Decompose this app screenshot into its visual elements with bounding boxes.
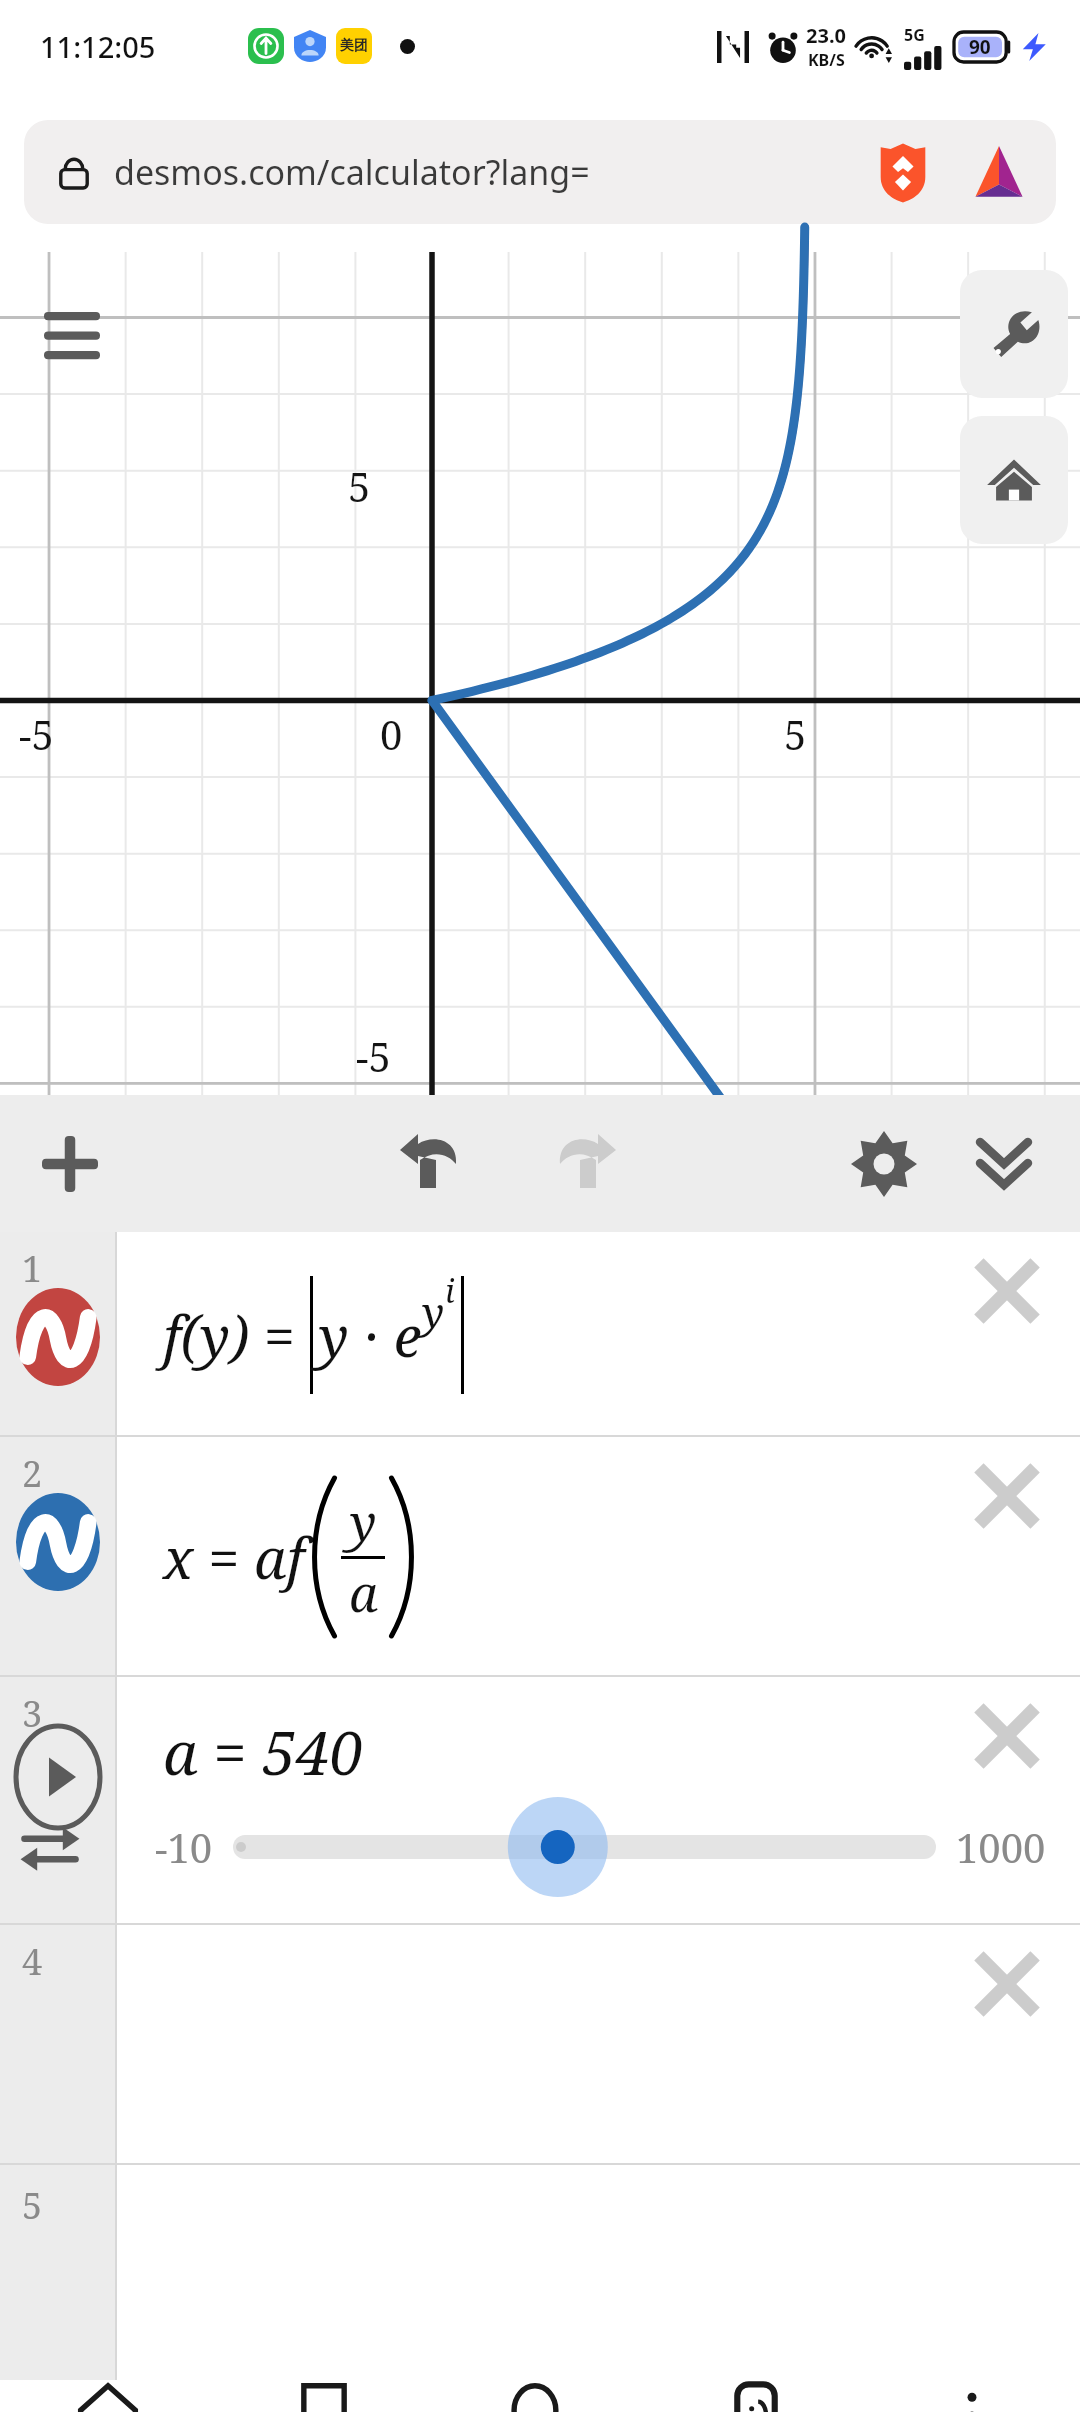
staticText: 90: [969, 34, 991, 60]
button[interactable]: Play animation: [13, 1723, 103, 1831]
staticText: 4: [22, 1937, 43, 1986]
staticText: -5: [19, 707, 54, 761]
button[interactable]: Delete expression 2: [968, 1457, 1046, 1535]
staticText: 11:12:05: [40, 27, 156, 66]
staticText: x = af: [163, 1519, 305, 1595]
button[interactable]: Delete expression 1: [968, 1252, 1046, 1330]
button[interactable]: Menu: [30, 288, 130, 388]
button[interactable]: Delete expression 3: [968, 1697, 1046, 1775]
button[interactable]: Delete expression 4: [968, 1945, 1046, 2023]
button[interactable]: Home: [0, 2380, 216, 2412]
staticText: a = 540: [163, 1711, 364, 1793]
button[interactable]: More options: [864, 2380, 1080, 2412]
button[interactable]: Search: [432, 2380, 648, 2412]
button[interactable]: Home view: [960, 416, 1068, 544]
button[interactable]: Tabs: [648, 2380, 864, 2412]
button[interactable]: Brave Rewards: [968, 141, 1030, 203]
staticText: 23.0: [806, 22, 846, 49]
button[interactable]: Brave Shields: [872, 141, 934, 203]
button[interactable]: Add expression: [20, 1114, 120, 1214]
button[interactable]: 2: [0, 1437, 1080, 1677]
staticText: 5: [22, 2181, 43, 2230]
staticText: -5: [356, 1029, 391, 1083]
staticText: 2: [22, 1449, 43, 1498]
staticText: KB/S: [808, 49, 845, 71]
button[interactable]: Settings: [834, 1114, 934, 1214]
button[interactable]: Collapse panel: [954, 1114, 1054, 1214]
staticText: f(y) =: [163, 1297, 310, 1373]
button[interactable]: Undo: [388, 1114, 488, 1214]
staticText: y: [350, 1488, 377, 1556]
button[interactable]: 4: [0, 1925, 1080, 2165]
button[interactable]: desmos.com/calculator?lang=: [24, 120, 1056, 224]
staticText: 5: [348, 459, 371, 513]
staticText: y · e: [319, 1297, 422, 1373]
staticText: 5: [784, 707, 807, 761]
button[interactable]: Slider for a: [233, 1805, 936, 1889]
button[interactable]: Graph settings: [960, 270, 1068, 398]
button[interactable]: 1: [0, 1232, 1080, 1437]
staticText: i: [445, 1269, 455, 1313]
staticText: 1: [22, 1244, 43, 1293]
staticText: 美团: [340, 37, 368, 55]
staticText: -10: [155, 1820, 213, 1874]
staticText: desmos.com/calculator?lang=: [114, 149, 590, 195]
staticText: a: [349, 1559, 378, 1627]
button[interactable]: Loop mode: [18, 1817, 82, 1881]
button[interactable]: Bookmarks: [216, 2380, 432, 2412]
staticText: 5G: [904, 24, 925, 46]
button[interactable]: 3: [0, 1677, 1080, 1925]
staticText: 1000: [956, 1820, 1046, 1874]
button[interactable]: Redo: [528, 1114, 628, 1214]
staticText: y: [422, 1283, 445, 1340]
staticText: 0: [380, 707, 403, 761]
staticText: 3: [22, 1689, 43, 1738]
